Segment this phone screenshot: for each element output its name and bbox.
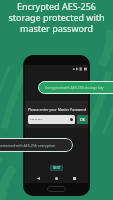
staticText: NEXT bbox=[53, 166, 61, 170]
button[interactable]: NEXT bbox=[50, 165, 63, 171]
staticText: Encrypted with AES-256 storage key bbox=[45, 85, 104, 90]
staticText: Encrypted AES-256 storage protected with… bbox=[8, 0, 105, 35]
button[interactable]: Home button bbox=[47, 186, 66, 192]
button[interactable]: Recents bbox=[70, 174, 79, 183]
staticText: Data protected with AES-256 encryption bbox=[0, 143, 56, 148]
button[interactable]: Encrypted with AES-256 storage key bbox=[38, 81, 113, 94]
button[interactable]: Back bbox=[34, 174, 43, 183]
staticText: Please enter your Master Password bbox=[28, 107, 86, 112]
button[interactable]: Home bbox=[52, 174, 61, 183]
button[interactable]: OK bbox=[77, 115, 88, 124]
button[interactable]: Data protected with AES-256 encryption bbox=[0, 138, 73, 152]
button[interactable]: •••••••• bbox=[28, 115, 75, 124]
button[interactable]: Show password bbox=[70, 118, 73, 121]
staticText: OK bbox=[80, 117, 85, 122]
staticText: •••••••• bbox=[30, 117, 43, 122]
